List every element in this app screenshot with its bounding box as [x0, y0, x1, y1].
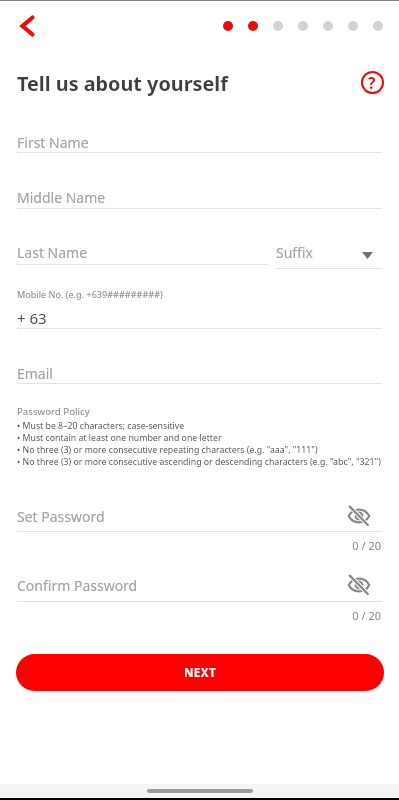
staticText: Tell us about yourself	[17, 70, 228, 97]
staticText: • No three (3) or more consecutive repea…	[17, 444, 318, 456]
staticText: Confirm Password	[17, 576, 138, 595]
button[interactable]: Help	[358, 68, 386, 96]
staticText: • Must contain at least one number and o…	[17, 432, 222, 444]
staticText: Password Policy	[17, 405, 90, 418]
button[interactable]: Show password	[348, 504, 370, 526]
button[interactable]: Back	[4, 3, 50, 49]
staticText: + 63	[17, 308, 47, 328]
staticText: Mobile No. (e.g. +639#########)	[17, 288, 163, 300]
staticText: Middle Name	[17, 188, 106, 207]
staticText: • No three (3) or more consecutive ascen…	[17, 456, 381, 468]
button[interactable]: NEXT	[16, 654, 384, 691]
staticText: ?	[368, 72, 376, 93]
staticText: NEXT	[184, 665, 217, 681]
staticText: Suffix	[276, 243, 313, 262]
staticText: Last Name	[17, 243, 88, 262]
staticText: • Must be 8–20 characters; case-sensitiv…	[17, 420, 185, 432]
staticText: Email	[17, 364, 53, 383]
staticText: 0 / 20	[0, 538, 381, 553]
staticText: First Name	[17, 133, 89, 152]
staticText: Set Password	[17, 507, 105, 526]
button[interactable]: Show confirm password	[348, 573, 370, 595]
staticText: 0 / 20	[0, 608, 381, 623]
